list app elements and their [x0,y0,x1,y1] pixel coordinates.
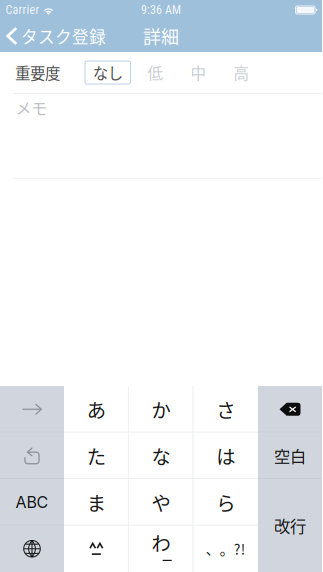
button[interactable]: タスク登録 [0,20,114,52]
staticText: ま [87,488,106,516]
button[interactable]: Emoticon [64,525,129,572]
staticText: なし [93,61,123,84]
staticText: タスク登録 [21,24,106,48]
button[interactable]: punctuation [193,525,258,572]
button[interactable]: 中 [176,61,219,84]
staticText: ら [216,488,235,516]
staticText: わ [151,528,170,556]
button[interactable]: 高 [219,61,262,84]
button[interactable]: ま [64,479,129,525]
staticText: 高 [233,61,248,84]
staticText: 空白 [274,444,306,468]
staticText: 改行 [274,514,306,537]
staticText: あ [87,395,106,423]
staticText: か [151,395,170,423]
staticText: 中 [190,61,205,84]
staticText: た [87,442,106,470]
button[interactable]: Return [258,479,322,572]
staticText: メモ [15,96,47,119]
staticText: 9:36 AM [141,3,181,17]
staticText: な [151,442,170,470]
button[interactable]: ABC [0,479,64,525]
button[interactable]: な [129,432,193,479]
staticText: は [216,442,235,470]
button[interactable]: ら [193,479,258,525]
staticText: さ [216,395,235,423]
button[interactable]: 低 [133,61,176,84]
staticText: 詳細 [143,23,179,49]
staticText: 、。?! [206,539,246,559]
button[interactable]: は [193,432,258,479]
button[interactable]: Next field [0,386,64,432]
button[interactable]: Switch keyboard [0,525,64,572]
button[interactable]: wa [129,525,193,572]
button[interactable]: Undo [0,432,64,479]
staticText: や [151,488,170,516]
staticText: 低 [147,61,162,84]
button[interactable]: さ [193,386,258,432]
button[interactable]: Space [258,432,322,479]
button[interactable]: あ [64,386,129,432]
button[interactable]: Delete [258,386,322,432]
staticText: Carrier [5,3,39,17]
button[interactable]: なし [85,61,130,84]
button[interactable]: か [129,386,193,432]
staticText: ABC [15,493,48,512]
button[interactable]: や [129,479,193,525]
staticText: 重要度 [15,61,60,84]
button[interactable]: た [64,432,129,479]
